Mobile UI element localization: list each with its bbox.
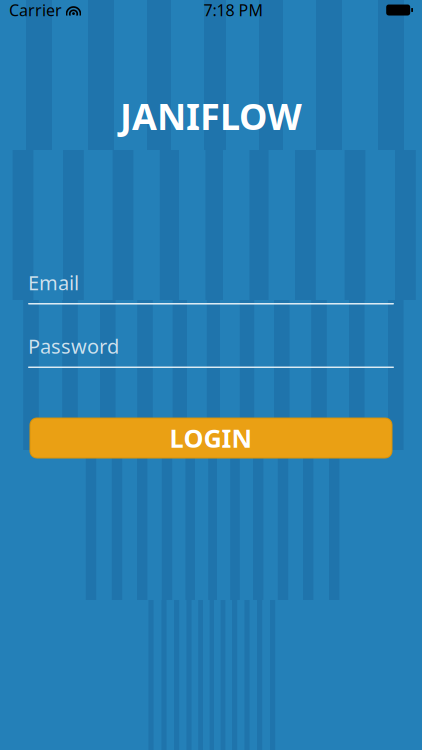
button[interactable]: LOGIN [30, 418, 392, 458]
staticText: Password [28, 333, 119, 359]
staticText: Email [28, 269, 79, 296]
staticText: LOGIN [169, 421, 252, 455]
staticText: 7:18 PM [204, 0, 264, 21]
staticText: Carrier [9, 0, 62, 21]
staticText: JANIFLOW [120, 92, 302, 140]
